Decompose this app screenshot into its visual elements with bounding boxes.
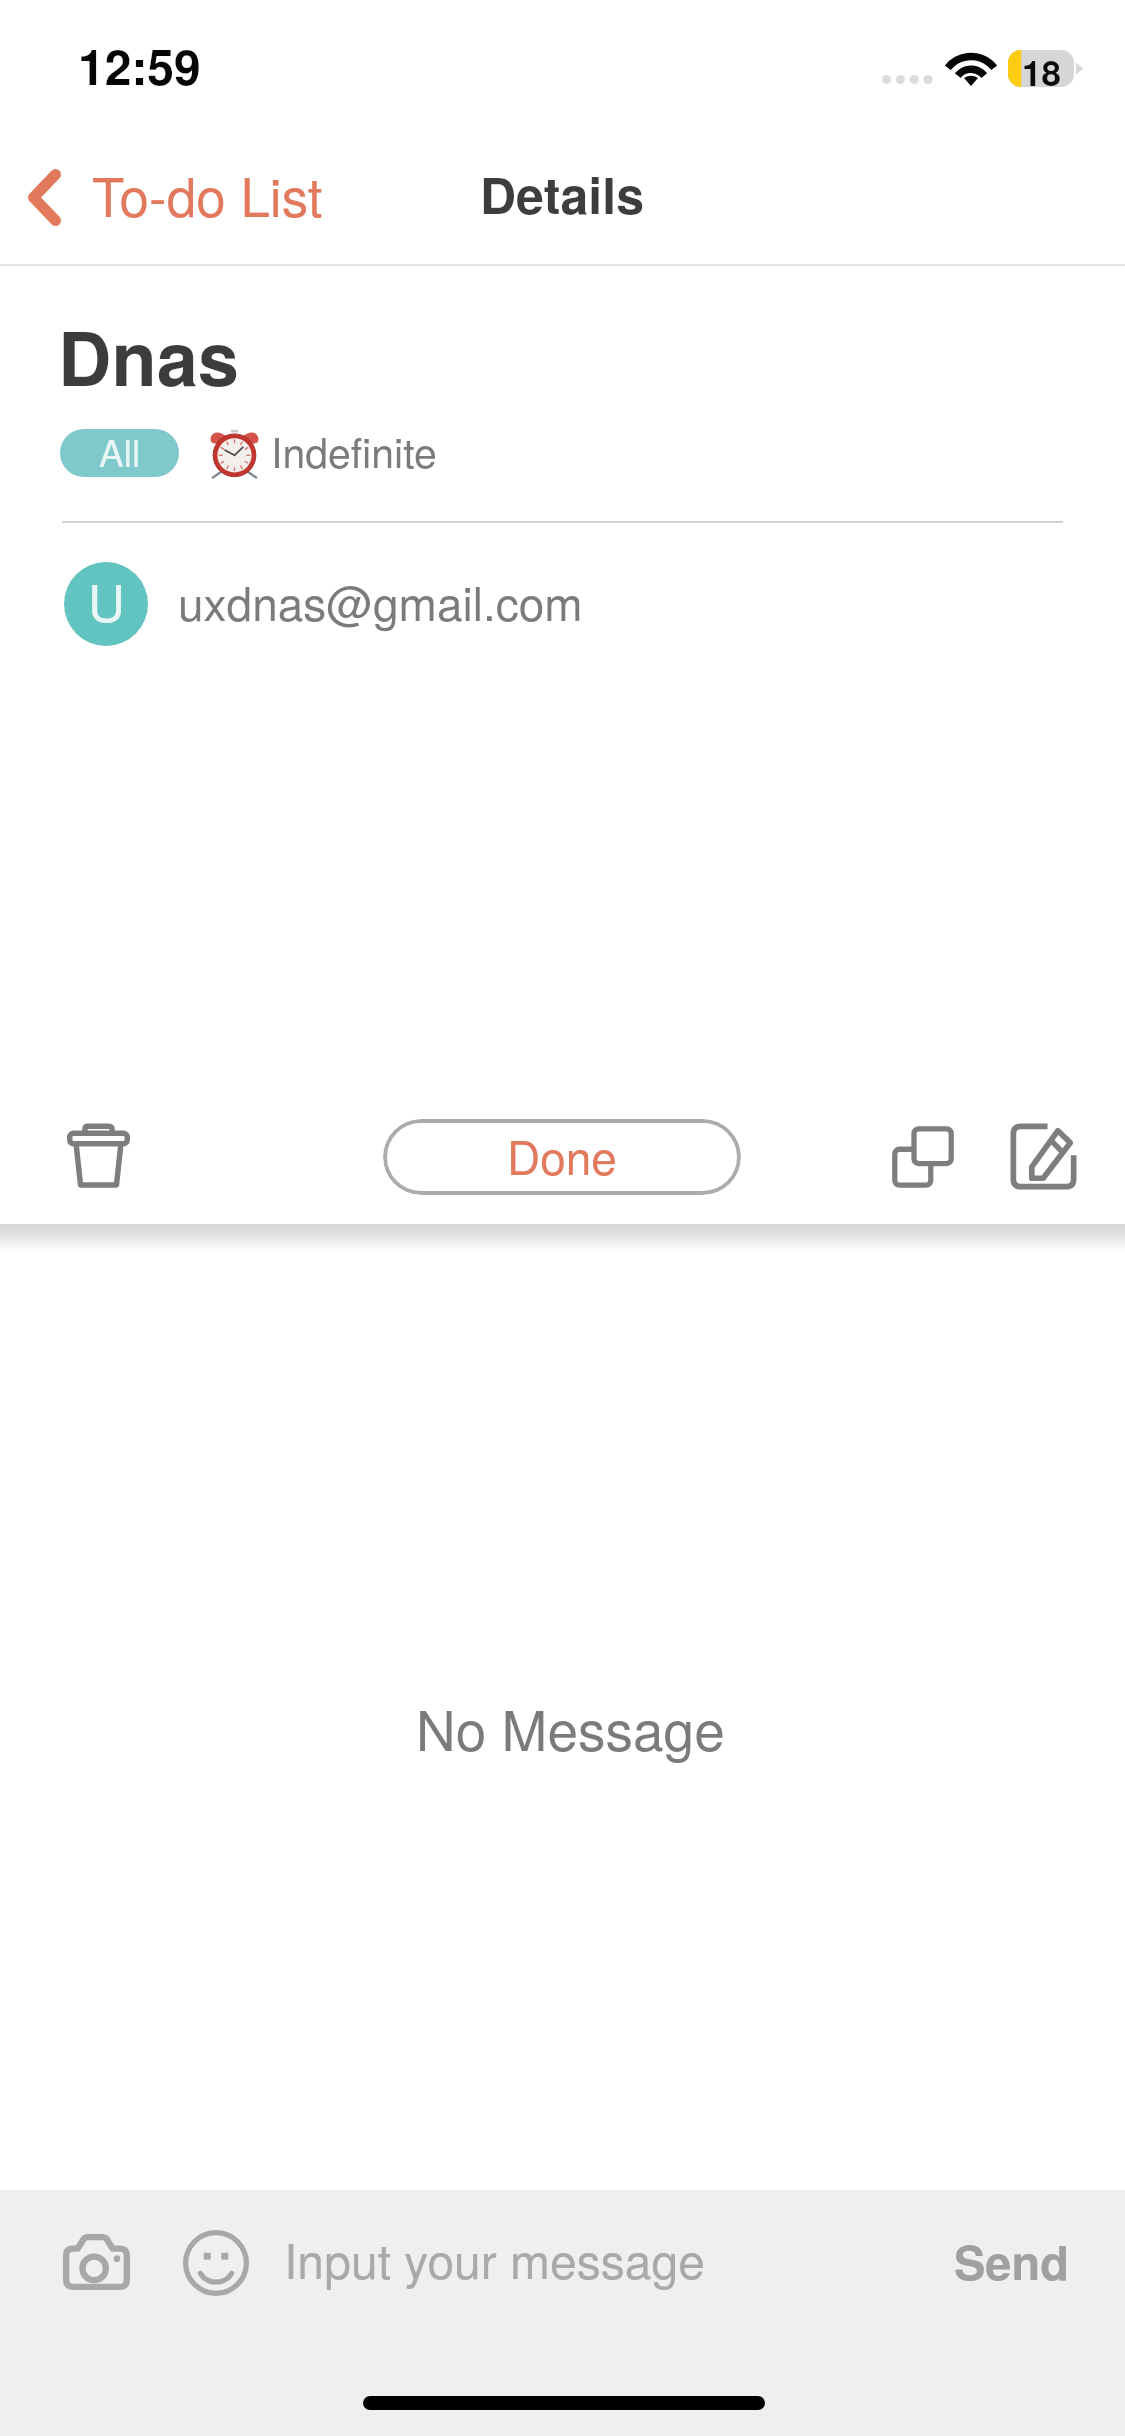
button[interactable]: Delete	[52, 1110, 144, 1202]
button[interactable]: Camera	[52, 2223, 140, 2303]
button[interactable]: U	[56, 556, 1068, 654]
staticText: Dnas	[58, 303, 239, 409]
staticText: No Message	[416, 1688, 725, 1767]
staticText: Done	[507, 1122, 617, 1188]
staticText: Details	[480, 158, 644, 230]
button[interactable]: Send	[938, 2211, 1085, 2310]
staticText: uxdnas@gmail.com	[178, 568, 583, 634]
button[interactable]: To-do List	[8, 128, 338, 244]
button[interactable]: Emoji	[176, 2223, 256, 2303]
staticText: Input your message	[284, 2224, 705, 2293]
staticText: U	[88, 563, 125, 636]
button[interactable]: All	[60, 429, 179, 477]
button[interactable]: Done	[383, 1119, 741, 1195]
button[interactable]: Edit	[1001, 1114, 1085, 1198]
staticText: To-do List	[92, 156, 323, 232]
staticText: Indefinite	[271, 421, 437, 480]
staticText: Send	[954, 2227, 1069, 2294]
staticText: 12:59	[78, 31, 201, 100]
staticText: 18	[1022, 47, 1061, 97]
button[interactable]: Copy	[881, 1115, 965, 1199]
staticText: All	[99, 429, 141, 473]
